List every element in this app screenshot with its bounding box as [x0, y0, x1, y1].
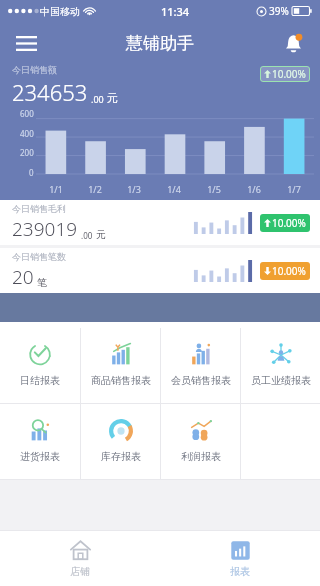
staticText: 今日销售毛利: [12, 203, 66, 214]
button[interactable]: 商品销售报表: [81, 328, 160, 403]
staticText: 元: [107, 91, 118, 105]
staticText: .00: [91, 93, 104, 105]
button[interactable]: 报表: [160, 531, 320, 586]
staticText: 39%: [269, 4, 289, 18]
button[interactable]: 10.00%: [260, 214, 310, 232]
button[interactable]: 10.00%: [260, 66, 310, 82]
staticText: 1/2: [88, 183, 102, 195]
staticText: 10.00%: [272, 216, 306, 230]
staticText: 笔: [37, 276, 47, 289]
staticText: 利润报表: [181, 450, 221, 463]
button[interactable]: 今日销售笔数: [0, 248, 320, 293]
staticText: 11:34: [161, 4, 190, 19]
staticText: 1/4: [167, 183, 181, 195]
staticText: 报表: [230, 565, 250, 578]
staticText: 20: [12, 264, 34, 290]
button[interactable]: 进货报表: [0, 404, 80, 479]
staticText: 元: [96, 228, 106, 241]
staticText: 店铺: [70, 565, 90, 578]
staticText: 进货报表: [20, 450, 60, 463]
button[interactable]: 10.00%: [260, 262, 310, 280]
staticText: 400: [20, 128, 34, 139]
staticText: 1/1: [49, 183, 63, 195]
staticText: 1/3: [127, 183, 141, 195]
staticText: 200: [20, 147, 34, 158]
staticText: 商品销售报表: [91, 374, 151, 387]
staticText: 234653: [12, 77, 88, 106]
button[interactable]: Menu: [8, 25, 44, 61]
button[interactable]: 利润报表: [161, 404, 240, 479]
staticText: 员工业绩报表: [251, 374, 311, 387]
button[interactable]: Notifications: [276, 26, 310, 60]
staticText: 600: [20, 108, 34, 119]
staticText: 今日销售笔数: [12, 251, 66, 262]
staticText: 10.00%: [272, 67, 306, 81]
staticText: 日结报表: [20, 374, 60, 387]
staticText: 今日销售额: [12, 64, 57, 75]
button[interactable]: 库存报表: [81, 404, 160, 479]
staticText: 1/6: [247, 183, 261, 195]
staticText: 会员销售报表: [171, 374, 231, 387]
button[interactable]: 日结报表: [0, 328, 80, 403]
button[interactable]: 今日销售毛利: [0, 200, 320, 245]
staticText: 239019: [12, 216, 78, 242]
staticText: 库存报表: [101, 450, 141, 463]
staticText: .00: [81, 230, 93, 241]
staticText: 10.00%: [272, 264, 306, 278]
button[interactable]: 员工业绩报表: [241, 328, 320, 403]
staticText: 1/5: [207, 183, 221, 195]
staticText: 1/7: [287, 183, 301, 195]
staticText: 中国移动: [40, 5, 80, 18]
staticText: 慧铺助手: [126, 33, 194, 54]
staticText: 0: [29, 167, 34, 178]
button[interactable]: 店铺: [0, 531, 160, 586]
button[interactable]: 会员销售报表: [161, 328, 240, 403]
